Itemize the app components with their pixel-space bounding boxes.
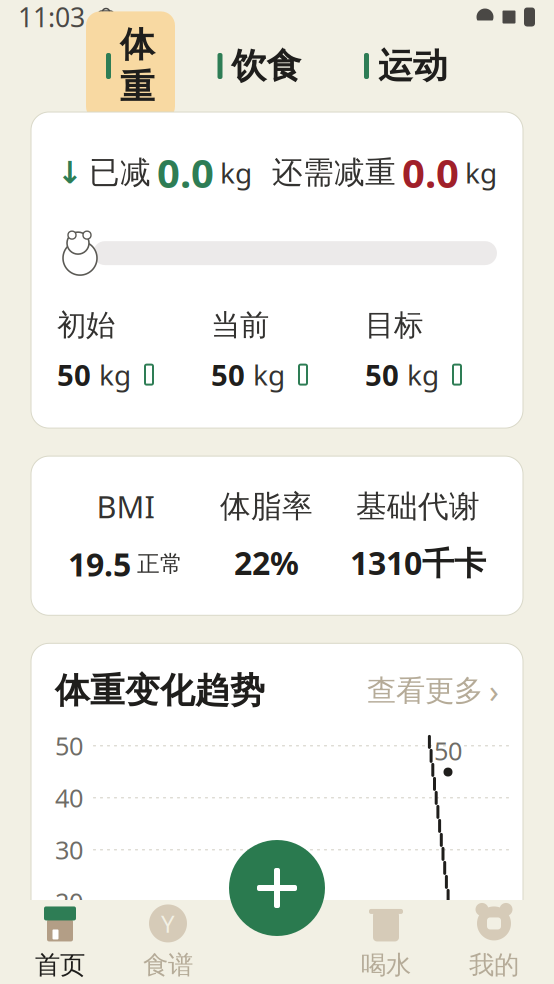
staticText: 饮食 xyxy=(231,45,301,87)
staticText: 初始 xyxy=(57,307,115,343)
button[interactable]: 体重 xyxy=(86,11,175,121)
staticText: 50 xyxy=(365,355,399,394)
button[interactable]: 饮食 xyxy=(197,33,321,99)
staticText: 50 xyxy=(55,729,83,762)
staticText: 50 xyxy=(57,355,91,394)
staticText: 11:03 xyxy=(18,0,85,35)
staticText: 1310千卡 xyxy=(350,541,486,584)
staticText: kg xyxy=(99,356,131,393)
button[interactable]: 50 xyxy=(365,355,467,394)
staticText: 20 xyxy=(55,885,83,918)
staticText: 运动 xyxy=(378,45,448,87)
staticText: › xyxy=(489,669,499,712)
staticText: 22% xyxy=(234,541,299,584)
staticText: 0.0 xyxy=(157,146,214,199)
staticText: 我的 xyxy=(469,949,519,980)
staticText: 正常 xyxy=(137,550,183,578)
staticText: 体重变化趋势 xyxy=(55,669,265,712)
staticText: kg xyxy=(253,356,285,393)
staticText: 查看更多 xyxy=(367,673,483,709)
staticText: 50 xyxy=(211,355,245,394)
button[interactable]: 50 xyxy=(57,355,159,394)
staticText: 已减 xyxy=(89,154,151,191)
staticText: 首页 xyxy=(35,949,85,980)
button[interactable]: 喝水 xyxy=(332,897,440,984)
button[interactable]: Add record xyxy=(229,840,325,936)
staticText: 基础代谢 xyxy=(356,488,480,525)
staticText: BMI xyxy=(96,486,154,527)
staticText: 还需减重 xyxy=(272,154,396,191)
staticText: 50 xyxy=(434,734,462,767)
staticText: 喝水 xyxy=(361,949,411,980)
staticText: 30 xyxy=(55,833,83,866)
staticText: 目标 xyxy=(365,307,423,343)
staticText: 食谱 xyxy=(143,949,193,980)
staticText: kg xyxy=(407,356,439,393)
staticText: 0.0 xyxy=(402,146,459,199)
button[interactable]: Y xyxy=(114,897,222,984)
staticText: 体脂率 xyxy=(220,488,313,525)
staticText: ↓ xyxy=(57,155,83,190)
staticText: 40 xyxy=(55,781,83,814)
button[interactable]: 50 xyxy=(211,355,313,394)
staticText: kg xyxy=(465,154,497,191)
button[interactable]: 运动 xyxy=(344,33,468,99)
button[interactable]: 首页 xyxy=(6,897,114,984)
staticText: 19.5 xyxy=(68,543,131,585)
button[interactable]: 查看更多 xyxy=(367,669,499,712)
staticText: kg xyxy=(220,154,252,191)
staticText: Y xyxy=(161,907,175,939)
staticText: 当前 xyxy=(211,307,269,343)
staticText: 体重 xyxy=(120,23,155,109)
button[interactable]: 我的 xyxy=(440,897,548,984)
